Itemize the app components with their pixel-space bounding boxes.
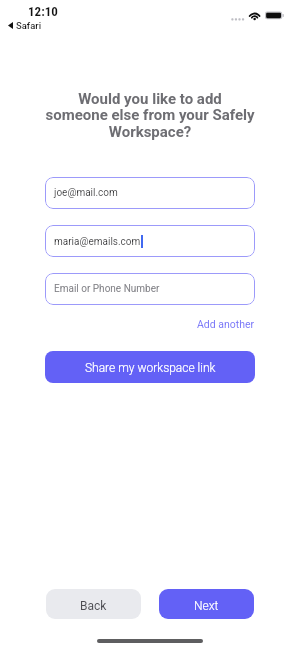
- staticText: Email or Phone Number: [54, 283, 160, 295]
- button[interactable]: Back to Safari: [8, 20, 42, 31]
- staticText: Share my workspace link: [85, 361, 216, 375]
- button[interactable]: maria@emails.com: [45, 225, 255, 257]
- button[interactable]: Share my workspace link: [45, 351, 255, 383]
- button[interactable]: Next: [159, 589, 254, 619]
- staticText: Safari: [16, 20, 42, 31]
- other: Back to Safari: [8, 22, 13, 29]
- staticText: Would you like to add someone else from …: [0, 90, 300, 141]
- button[interactable]: Add another: [195, 315, 255, 333]
- button[interactable]: Back: [46, 589, 141, 619]
- staticText: maria@emails.com: [54, 236, 141, 248]
- staticText: joe@mail.com: [54, 187, 118, 199]
- staticText: Add another: [197, 318, 255, 330]
- staticText: Next: [194, 599, 219, 613]
- button[interactable]: joe@mail.com: [45, 177, 255, 209]
- button[interactable]: Email or Phone Number: [45, 273, 255, 305]
- staticText: Back: [80, 599, 107, 613]
- staticText: 12:10: [28, 4, 58, 19]
